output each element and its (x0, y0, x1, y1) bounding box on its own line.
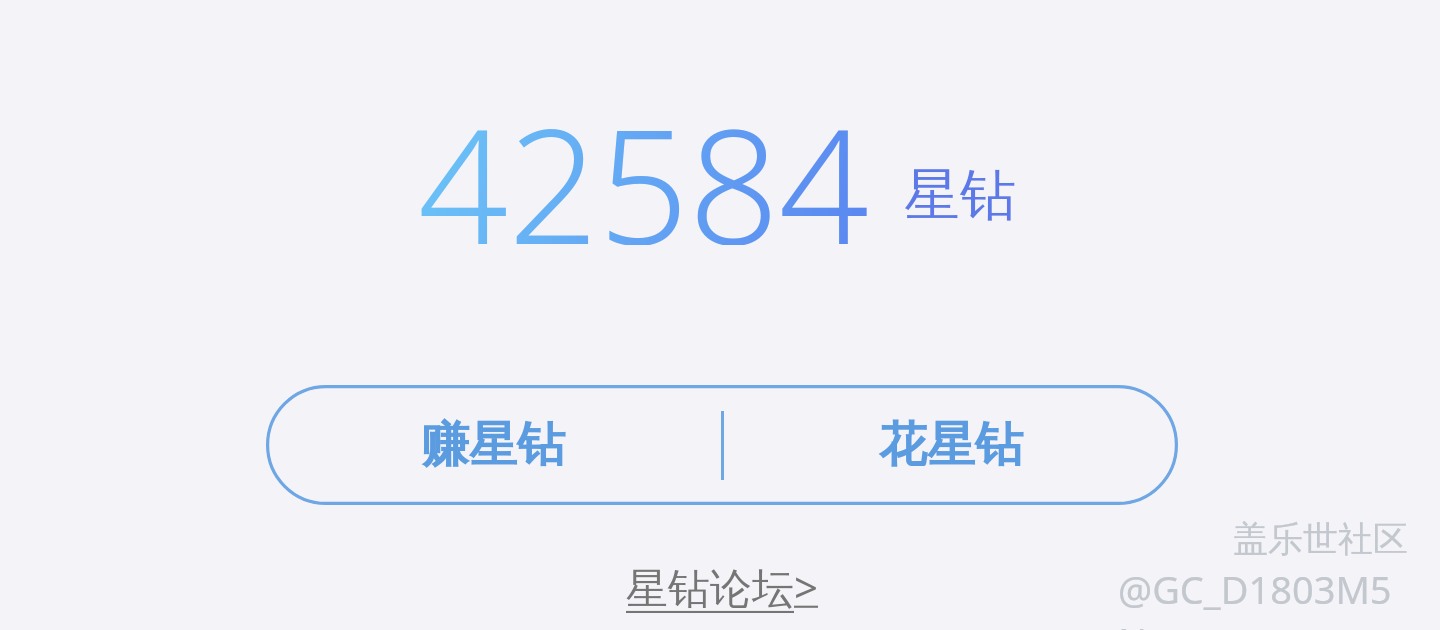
button[interactable]: 花星钻 (724, 385, 1178, 505)
button[interactable]: 赚星钻 (266, 385, 720, 505)
other: Watermark (1140, 515, 1430, 610)
staticText: 花星钻 (879, 415, 1023, 475)
staticText: 星钻 (904, 160, 1016, 231)
staticText: 赚星钻 (421, 415, 565, 475)
staticText: 42584 (418, 75, 870, 245)
staticText: 星钻论坛> (626, 558, 819, 615)
staticText: @GC_D1803M5N (1118, 563, 1408, 630)
button[interactable]: 星钻论坛> (600, 556, 845, 616)
staticText: 盖乐世社区 (1233, 517, 1408, 561)
